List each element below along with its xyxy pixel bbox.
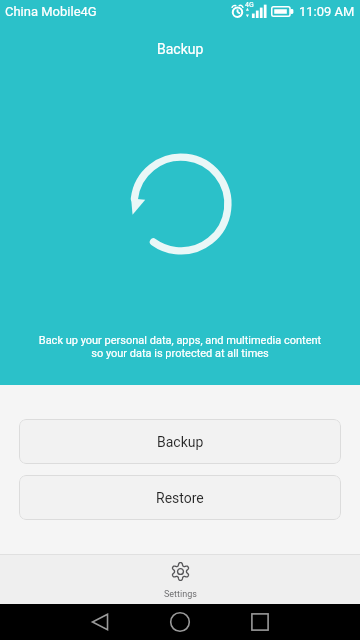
staticText: Backup (157, 41, 204, 57)
button[interactable]: Home (158, 604, 202, 640)
staticText: Restore (156, 490, 204, 506)
staticText: Backup (157, 434, 204, 450)
other: Settings (171, 562, 190, 581)
button[interactable]: Backup (19, 419, 341, 464)
button[interactable]: Restore (19, 475, 341, 520)
staticText: China Mobile4G (5, 4, 97, 19)
button[interactable]: Back (78, 604, 122, 640)
staticText: 11:09 AM (299, 4, 355, 19)
staticText: 4G (245, 1, 254, 9)
staticText: Back up your personal data, apps, and mu… (0, 334, 360, 360)
staticText: Settings (164, 589, 197, 600)
button[interactable]: Recent apps (238, 604, 282, 640)
button[interactable]: Settings (0, 554, 360, 604)
